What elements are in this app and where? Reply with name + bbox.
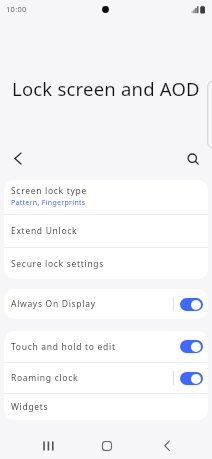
button[interactable]: Roaming clock	[4, 363, 208, 393]
staticText: Roaming clock	[11, 372, 79, 384]
button[interactable]	[155, 434, 179, 458]
staticText: Lock screen and AOD	[12, 76, 200, 101]
staticText: Extend Unlock	[11, 225, 78, 237]
staticText: Pattern, Fingerprints	[11, 198, 86, 208]
button[interactable]	[95, 434, 119, 458]
staticText: Screen lock type	[11, 185, 87, 197]
staticText: Always On Display	[11, 298, 96, 310]
button[interactable]: Always On Display	[4, 289, 208, 319]
button[interactable]	[180, 340, 203, 353]
button[interactable]	[180, 372, 203, 385]
button[interactable]: Widgets	[4, 394, 208, 420]
staticText: Widgets	[11, 401, 49, 413]
button[interactable]	[36, 434, 60, 458]
button[interactable]	[180, 298, 203, 311]
button[interactable]: Secure lock settings	[4, 248, 208, 279]
button[interactable]: Screen lock type	[4, 180, 208, 214]
button[interactable]: Extend Unlock	[4, 215, 208, 247]
button[interactable]	[6, 147, 29, 170]
staticText: Touch and hold to edit	[11, 341, 116, 353]
staticText: Secure lock settings	[11, 258, 105, 270]
button[interactable]	[182, 148, 204, 170]
staticText: 10:00	[6, 4, 27, 14]
button[interactable]: Touch and hold to edit	[4, 331, 208, 362]
